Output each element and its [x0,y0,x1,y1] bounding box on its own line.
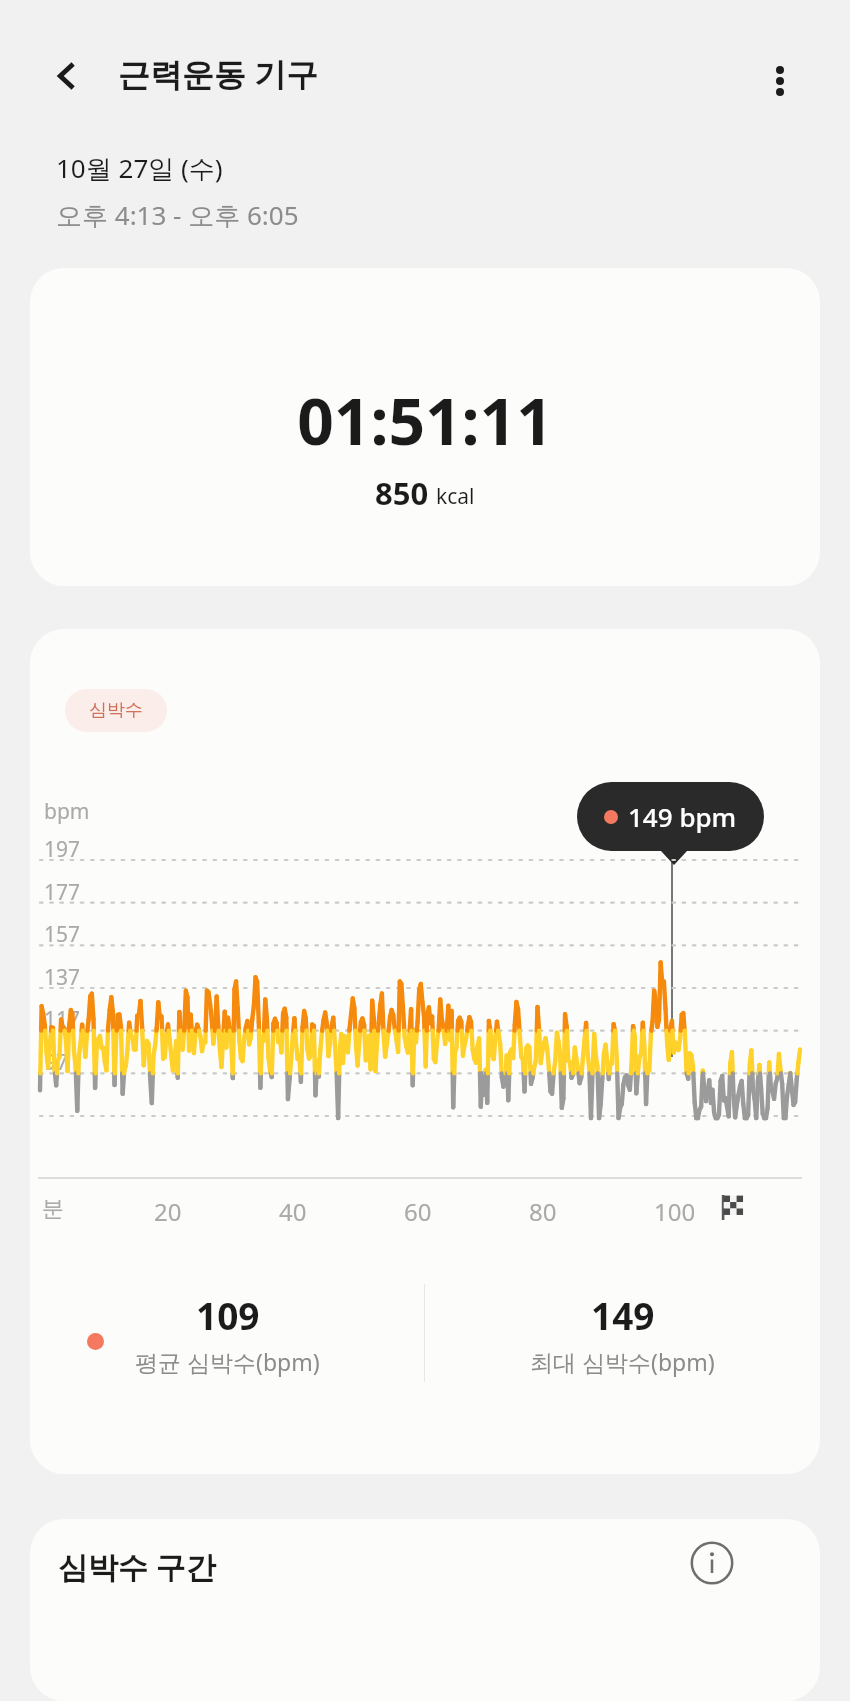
staticText: 197 [44,835,81,864]
staticText: 97 [44,1048,69,1077]
staticText: 117 [44,1005,81,1034]
staticText: 근력운동 기구 [118,52,319,96]
staticText: 177 [44,878,81,907]
staticText: 60 [404,1195,432,1228]
staticText: kcal [436,482,475,511]
staticText: 109 [196,1290,260,1340]
staticText: 평균 심박수(bpm) [135,1346,320,1377]
button[interactable]: 109 [30,1267,424,1399]
staticText: 149 [591,1290,655,1340]
staticText: 01:51:11 [297,377,553,464]
button[interactable]: 149 bpm [577,782,764,851]
staticText: 80 [529,1195,557,1228]
staticText: 심박수 [89,699,143,722]
button[interactable]: Back [34,43,100,109]
staticText: 최대 심박수(bpm) [530,1346,715,1377]
staticText: 850 [375,472,429,514]
button[interactable]: 심박수 [65,689,167,732]
staticText: 40 [279,1195,307,1228]
staticText: 100 [654,1195,696,1228]
button[interactable]: 149 [425,1267,820,1399]
button[interactable]: 심박수 구간 [30,1519,820,1701]
other: Finish [718,1192,748,1222]
staticText: 오후 4:13 - 오후 6:05 [56,197,299,233]
staticText: bpm [44,797,90,826]
staticText: 심박수 구간 [58,1546,216,1587]
staticText: 137 [44,963,81,992]
staticText: 149 bpm [628,799,737,834]
button[interactable]: Information [680,1531,744,1595]
staticText: 10월 27일 (수) [56,150,223,186]
button[interactable]: More options [747,48,813,114]
staticText: 157 [44,920,81,949]
staticText: 분 [42,1195,64,1223]
staticText: 20 [154,1195,182,1228]
button[interactable]: 01:51:11 [30,268,820,586]
